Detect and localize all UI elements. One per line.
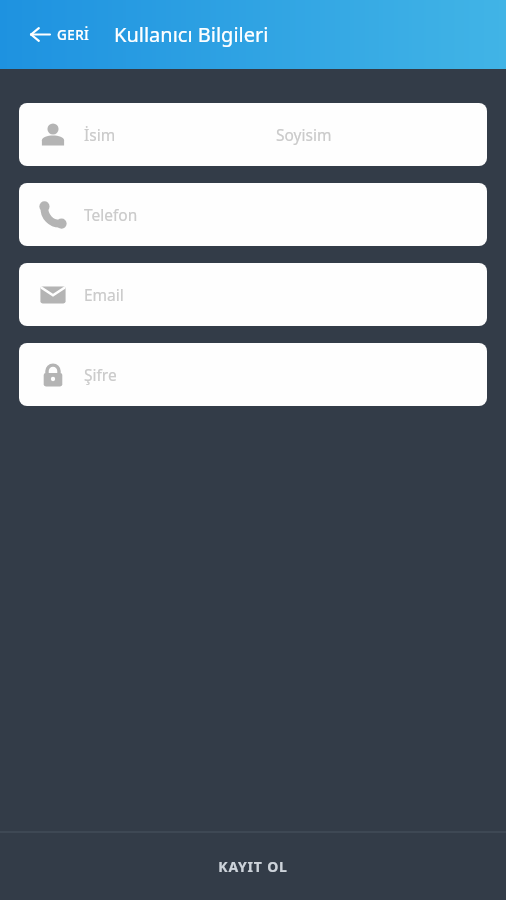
button[interactable]: Telefon — [19, 183, 487, 246]
staticText: Telefon — [84, 204, 138, 225]
staticText: İsim — [84, 124, 116, 145]
staticText: GERİ — [57, 26, 90, 44]
button[interactable]: İsim — [19, 103, 487, 166]
button[interactable]: Şifre — [19, 343, 487, 406]
button[interactable]: Back — [24, 16, 96, 53]
button[interactable]: Email — [19, 263, 487, 326]
staticText: Email — [84, 284, 124, 305]
button[interactable]: KAYIT OL — [0, 833, 506, 900]
staticText: KAYIT OL — [218, 857, 288, 876]
staticText: Soyisim — [276, 124, 332, 145]
staticText: Şifre — [84, 364, 117, 385]
staticText: Kullanıcı Bilgileri — [114, 21, 269, 48]
